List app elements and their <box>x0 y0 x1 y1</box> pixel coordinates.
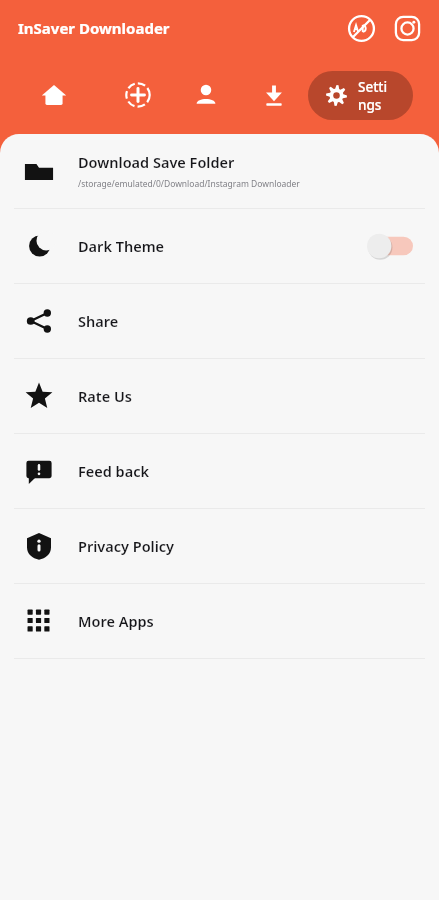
button[interactable]: Dark Theme <box>0 209 439 283</box>
button[interactable]: Feed back <box>0 434 439 508</box>
staticText: Privacy Policy <box>78 536 175 556</box>
button[interactable]: More Apps <box>0 584 439 658</box>
button[interactable]: Home <box>4 67 104 123</box>
staticText: Share <box>78 311 119 331</box>
button[interactable]: Add story <box>104 67 172 123</box>
staticText: Download Save Folder <box>78 152 235 172</box>
button[interactable]: Remove ads <box>343 10 379 46</box>
staticText: More Apps <box>78 611 154 631</box>
staticText: InSaver Downloader <box>18 18 170 38</box>
staticText: Settings <box>358 78 393 114</box>
button[interactable]: Dark theme toggle <box>367 233 413 259</box>
staticText: /storage/emulated/0/Download/Instagram D… <box>78 178 300 190</box>
button[interactable]: Privacy Policy <box>0 509 439 583</box>
staticText: Dark Theme <box>78 236 165 256</box>
staticText: Rate Us <box>78 386 132 406</box>
button[interactable]: Rate Us <box>0 359 439 433</box>
button[interactable]: Download Save Folder <box>0 134 439 208</box>
button[interactable]: Downloads <box>240 67 308 123</box>
staticText: Feed back <box>78 461 149 481</box>
button[interactable]: Instagram <box>389 10 425 46</box>
button[interactable]: Share <box>0 284 439 358</box>
button[interactable]: Profile <box>172 67 240 123</box>
button[interactable]: Settings <box>308 71 413 120</box>
